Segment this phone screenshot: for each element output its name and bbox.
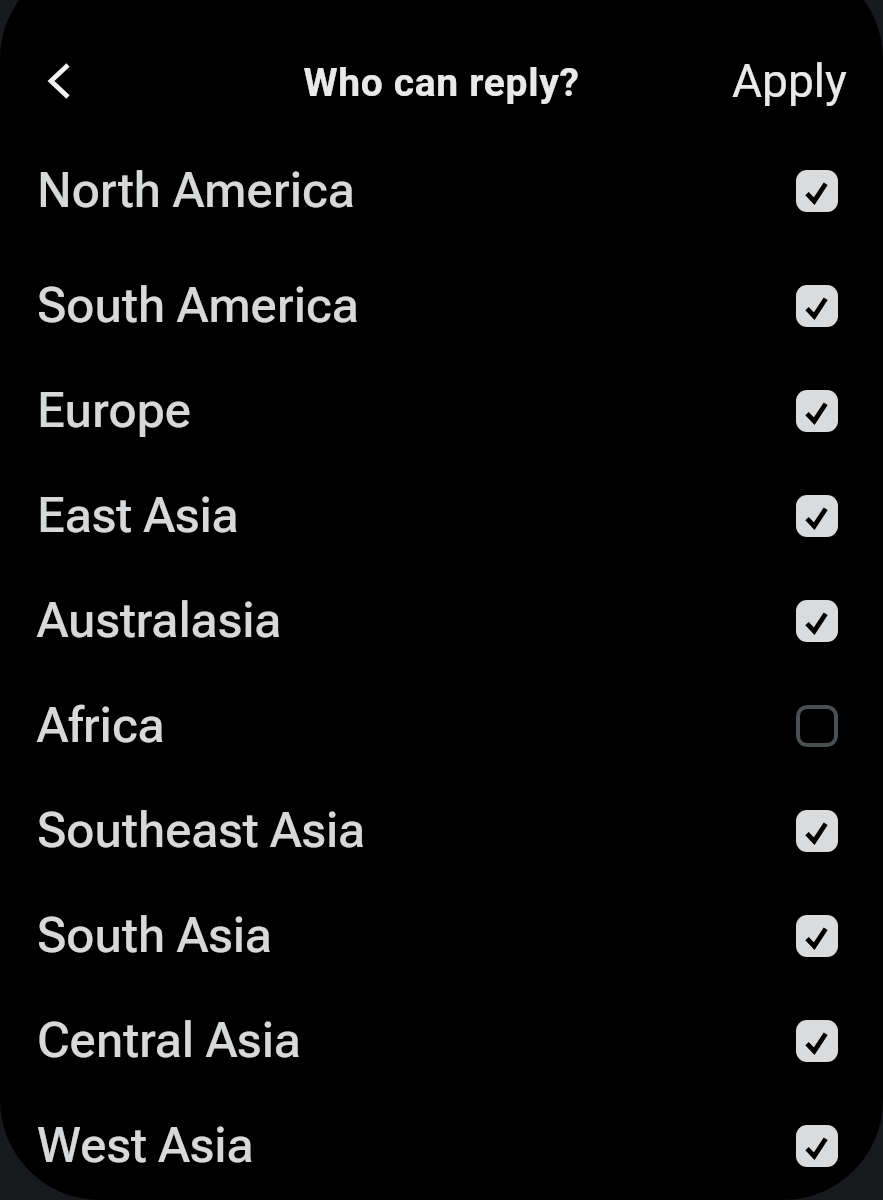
button[interactable]: Back xyxy=(25,47,93,115)
button[interactable]: Australasia xyxy=(0,568,883,673)
staticText: Australasia xyxy=(37,592,796,649)
staticText: South Asia xyxy=(37,907,796,964)
button[interactable]: Southeast Asia xyxy=(0,778,883,883)
staticText: Europe xyxy=(37,382,796,439)
button[interactable]: Central Asia xyxy=(0,988,883,1093)
staticText: North America xyxy=(37,162,796,219)
staticText: Central Asia xyxy=(37,1012,796,1069)
staticText: Apply xyxy=(732,54,847,108)
staticText: South America xyxy=(37,277,796,334)
button[interactable]: Africa xyxy=(0,673,883,778)
staticText: East Asia xyxy=(37,487,796,544)
button[interactable]: South Asia xyxy=(0,883,883,988)
staticText: West Asia xyxy=(37,1117,796,1174)
button[interactable]: Europe xyxy=(0,358,883,463)
button[interactable]: South America xyxy=(0,253,883,358)
button[interactable]: Apply xyxy=(712,42,883,120)
button[interactable]: West Asia xyxy=(0,1093,883,1198)
button[interactable]: East Asia xyxy=(0,463,883,568)
staticText: Southeast Asia xyxy=(37,802,796,859)
staticText: Africa xyxy=(37,697,796,754)
button[interactable]: North America xyxy=(0,138,883,243)
staticText: Who can reply? xyxy=(303,60,580,106)
